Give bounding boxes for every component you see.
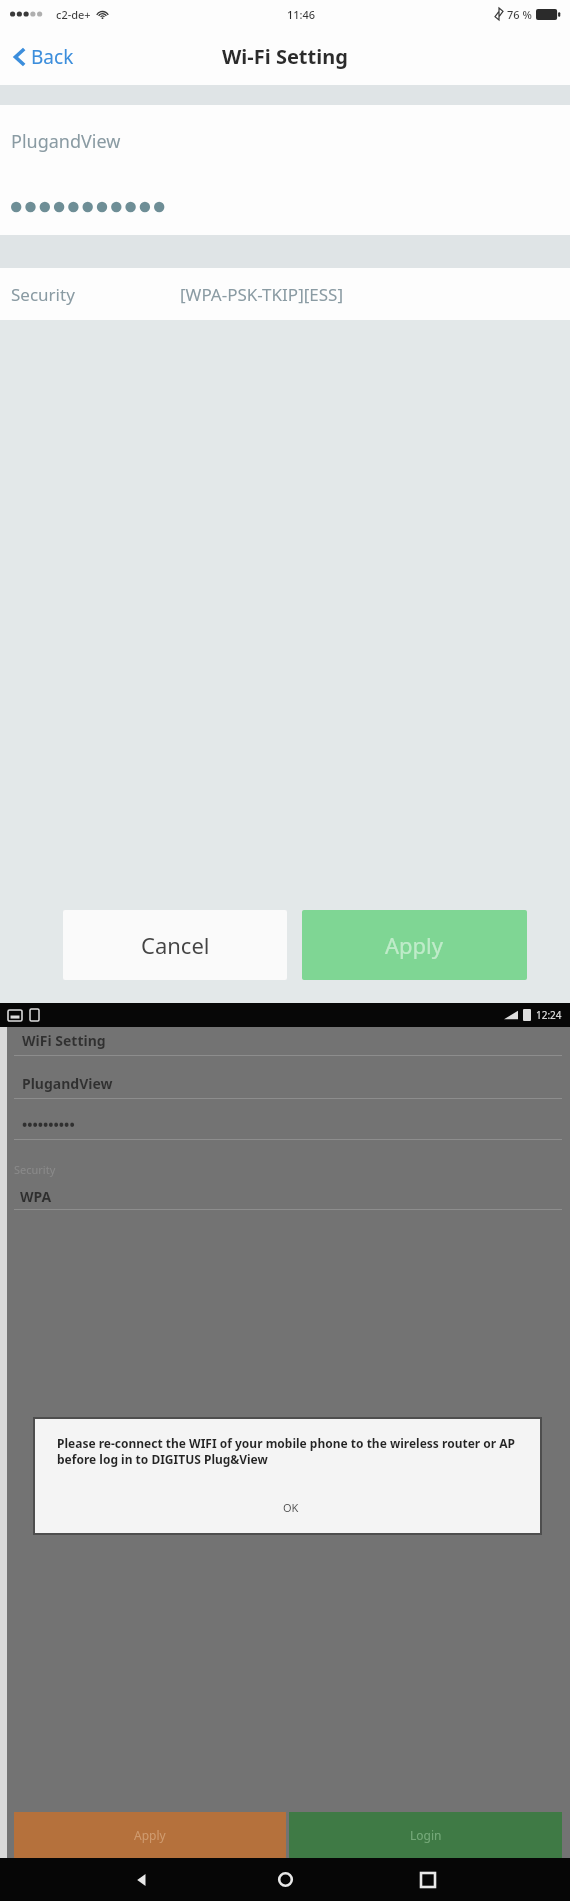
button[interactable]: PlugandView bbox=[0, 1074, 570, 1099]
staticText: [WPA-PSK-TKIP][ESS] bbox=[180, 283, 344, 306]
button[interactable]: Home bbox=[263, 1858, 307, 1901]
staticText: Back bbox=[31, 44, 74, 70]
staticText: 11:46 bbox=[287, 7, 316, 22]
staticText: WPA bbox=[20, 1187, 52, 1206]
button[interactable]: Security bbox=[0, 268, 570, 320]
staticText: OK bbox=[283, 1500, 299, 1515]
button[interactable]: WPA bbox=[0, 1187, 570, 1210]
button[interactable]: Back bbox=[0, 36, 90, 78]
staticText: Security bbox=[11, 283, 75, 306]
staticText: WiFi Setting bbox=[22, 1031, 106, 1050]
staticText: 12:24 bbox=[536, 1008, 562, 1022]
staticText: Security bbox=[14, 1162, 56, 1177]
button[interactable]: Apply bbox=[14, 1812, 286, 1858]
staticText: Login bbox=[410, 1827, 442, 1843]
staticText: PlugandView bbox=[11, 129, 121, 154]
button[interactable]: Cancel bbox=[63, 910, 287, 980]
button[interactable]: Apply bbox=[302, 910, 527, 980]
button[interactable]: PlugandView bbox=[0, 105, 570, 178]
button[interactable]: •••••••••• bbox=[0, 1115, 570, 1140]
staticText: Cancel bbox=[141, 930, 210, 960]
button[interactable]: WiFi Setting bbox=[0, 1031, 570, 1056]
staticText: c2-de+ bbox=[56, 7, 91, 22]
button[interactable]: Back bbox=[120, 1858, 164, 1901]
button[interactable]: OK bbox=[57, 1500, 524, 1515]
button[interactable]: Recents bbox=[406, 1858, 450, 1901]
staticText: •••••••••• bbox=[22, 1115, 75, 1134]
staticText: 76 % bbox=[507, 7, 532, 22]
staticText: PlugandView bbox=[22, 1074, 113, 1093]
button[interactable]: Login bbox=[289, 1812, 562, 1858]
staticText: Please re-connect the WIFI of your mobil… bbox=[57, 1435, 524, 1468]
staticText: Wi-Fi Setting bbox=[222, 43, 348, 70]
staticText: Apply bbox=[385, 930, 444, 960]
button[interactable] bbox=[0, 178, 570, 235]
staticText: Apply bbox=[134, 1827, 166, 1843]
